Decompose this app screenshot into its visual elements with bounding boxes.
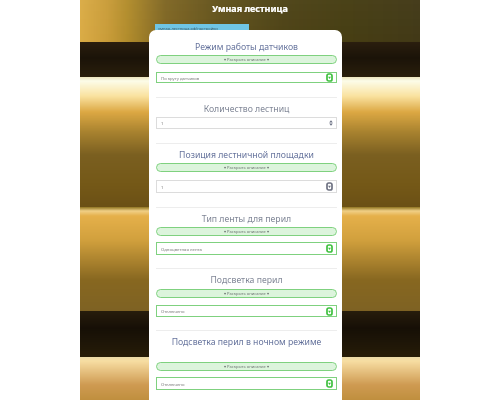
staticText: Количество лестниц	[156, 103, 337, 115]
staticText: 1	[161, 120, 164, 126]
button[interactable]: ▾ Раскрыть описание ▾	[156, 55, 337, 64]
staticText: Отключено	[161, 381, 185, 387]
button[interactable]: ▾ Раскрыть описание ▾	[156, 362, 337, 371]
staticText: ▾ Раскрыть описание ▾	[224, 165, 269, 171]
staticText: ▾ Раскрыть описание ▾	[224, 229, 269, 235]
button[interactable]: ▾ Раскрыть описание ▾	[156, 289, 337, 298]
staticText: Тип ленты для перил	[156, 213, 337, 225]
button[interactable]: ▾ Раскрыть описание ▾	[156, 227, 337, 236]
staticText: умная-лестница.рф/настройки	[158, 26, 218, 31]
staticText: ▾ Раскрыть описание ▾	[224, 364, 269, 370]
other: Изменить количество	[329, 120, 333, 126]
button[interactable]: 1	[156, 180, 337, 193]
staticText: ▾ Раскрыть описание ▾	[224, 291, 269, 297]
staticText: Отключено	[161, 308, 185, 314]
other: Открыть список	[327, 308, 332, 315]
button[interactable]: ▾ Раскрыть описание ▾	[156, 163, 337, 172]
button[interactable]: Одноцветная лента	[156, 242, 337, 255]
button[interactable]: Отключено	[156, 377, 337, 390]
staticText: Одноцветная лента	[161, 246, 202, 252]
staticText: По кругу датчиков	[161, 75, 200, 81]
staticText: Позиция лестничной площадки	[156, 149, 337, 161]
other: Открыть список	[327, 183, 332, 190]
button[interactable]: 1	[156, 117, 337, 129]
button[interactable]: По кругу датчиков	[156, 72, 337, 83]
staticText: Подсветка перил в ночном режиме	[156, 336, 337, 348]
other: Открыть список	[327, 245, 332, 252]
button[interactable]: умная-лестница.рф/настройки	[155, 24, 249, 33]
staticText: ▾ Раскрыть описание ▾	[224, 57, 269, 63]
staticText: Подсветка перил	[156, 274, 337, 286]
staticText: Умная лестница	[80, 2, 420, 14]
other: Открыть список	[327, 380, 332, 387]
other: Открыть список	[327, 74, 332, 81]
button[interactable]: Отключено	[156, 305, 337, 317]
staticText: Режим работы датчиков	[156, 41, 337, 53]
staticText: 1	[161, 184, 164, 190]
